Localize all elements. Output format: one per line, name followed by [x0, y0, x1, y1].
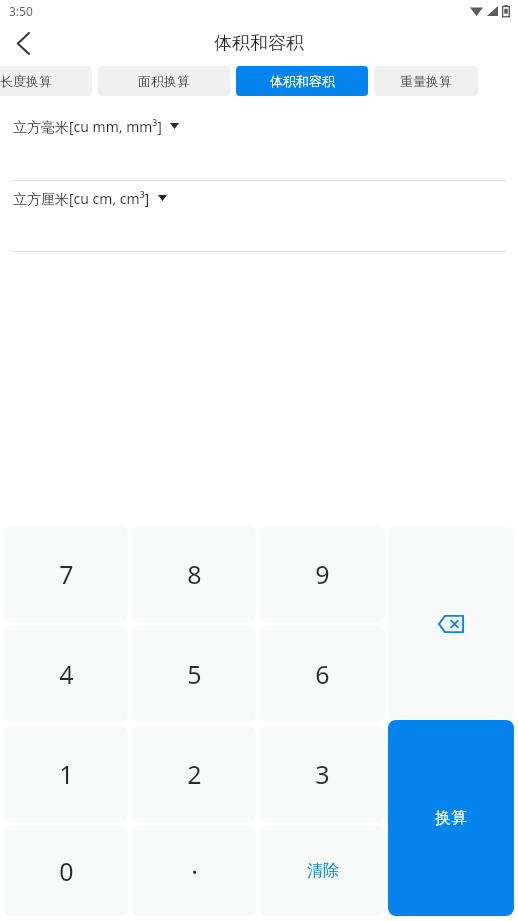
- button[interactable]: 长度换算: [0, 66, 92, 96]
- button[interactable]: 1: [4, 726, 128, 822]
- staticText: 立方毫米[cu mm, mm³]: [13, 117, 162, 136]
- staticText: 5: [187, 657, 202, 691]
- staticText: 4: [59, 657, 74, 691]
- button[interactable]: 体积和容积: [236, 66, 368, 96]
- staticText: 2: [187, 757, 202, 791]
- button[interactable]: Back: [0, 22, 46, 64]
- button[interactable]: ·: [132, 826, 256, 916]
- button[interactable]: 9: [260, 526, 385, 622]
- button[interactable]: 立方毫米[cu mm, mm³]: [13, 112, 505, 140]
- button[interactable]: 重量换算: [374, 66, 478, 96]
- staticText: 9: [315, 557, 330, 591]
- staticText: 3: [315, 757, 330, 791]
- button[interactable]: Backspace: [388, 526, 514, 722]
- staticText: 长度换算: [0, 73, 52, 89]
- staticText: 0: [59, 854, 74, 888]
- staticText: 重量换算: [400, 73, 452, 89]
- button[interactable]: 面积换算: [98, 66, 230, 96]
- button[interactable]: 7: [4, 526, 128, 622]
- staticText: 1: [59, 757, 74, 791]
- button[interactable]: 2: [132, 726, 256, 822]
- staticText: 8: [187, 557, 202, 591]
- staticText: ·: [191, 854, 198, 888]
- staticText: 体积和容积: [270, 73, 335, 89]
- button[interactable]: 4: [4, 626, 128, 722]
- button[interactable]: 立方厘米[cu cm, cm³]: [13, 184, 505, 212]
- staticText: 清除: [307, 861, 339, 881]
- button[interactable]: 6: [260, 626, 385, 722]
- staticText: 体积和容积: [214, 32, 304, 55]
- button[interactable]: 8: [132, 526, 256, 622]
- staticText: 6: [315, 657, 330, 691]
- staticText: 7: [59, 557, 74, 591]
- staticText: 面积换算: [138, 73, 190, 89]
- button[interactable]: 5: [132, 626, 256, 722]
- staticText: 3:50: [9, 3, 33, 19]
- button[interactable]: 0: [4, 826, 128, 916]
- staticText: 换算: [435, 808, 467, 828]
- button[interactable]: 3: [260, 726, 385, 822]
- button[interactable]: 清除: [260, 826, 385, 916]
- button[interactable]: 换算: [388, 720, 514, 916]
- staticText: 立方厘米[cu cm, cm³]: [13, 189, 150, 208]
